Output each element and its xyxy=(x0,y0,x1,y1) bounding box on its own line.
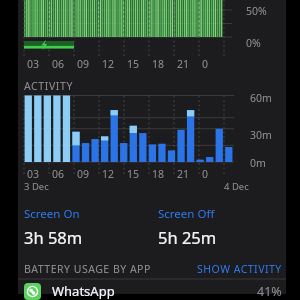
staticText: 30m xyxy=(250,128,272,142)
staticText: 21 xyxy=(177,167,190,181)
staticText: 60m xyxy=(250,91,272,105)
button[interactable]: SHOW ACTIVITY xyxy=(197,262,282,276)
staticText: 06 xyxy=(52,167,65,181)
staticText: 50% xyxy=(246,4,267,18)
staticText: 09 xyxy=(77,167,90,181)
staticText: 15 xyxy=(127,167,140,181)
button[interactable]: Screen Off xyxy=(152,206,286,248)
staticText: ACTIVITY xyxy=(24,79,73,93)
staticText: 12 xyxy=(102,167,115,181)
staticText: 0 xyxy=(202,167,209,181)
staticText: 5h 25m xyxy=(158,226,217,248)
staticText: 41% xyxy=(257,283,282,300)
staticText: WhatsApp xyxy=(52,282,115,300)
button[interactable]: WhatsApp xyxy=(18,282,286,300)
staticText: 15 xyxy=(127,57,140,71)
staticText: 21 xyxy=(177,57,190,71)
staticText: 18 xyxy=(152,57,165,71)
staticText: 06 xyxy=(52,57,65,71)
staticText: BATTERY USAGE BY APP xyxy=(24,262,151,276)
other: WhatsApp xyxy=(24,283,41,300)
staticText: 3h 58m xyxy=(24,226,83,248)
button[interactable]: Screen On xyxy=(18,206,152,248)
staticText: 09 xyxy=(77,57,90,71)
staticText: 3 Dec xyxy=(24,180,49,193)
staticText: 12 xyxy=(102,57,115,71)
staticText: 18 xyxy=(152,167,165,181)
staticText: SHOW ACTIVITY xyxy=(197,262,282,276)
staticText: Screen Off xyxy=(158,206,215,222)
staticText: 03 xyxy=(27,57,40,71)
staticText: Screen On xyxy=(24,206,80,222)
staticText: 0% xyxy=(246,36,261,50)
staticText: 4 Dec xyxy=(224,180,249,193)
staticText: 03 xyxy=(27,167,40,181)
staticText: 0m xyxy=(250,156,266,170)
staticText: 0 xyxy=(202,57,209,71)
